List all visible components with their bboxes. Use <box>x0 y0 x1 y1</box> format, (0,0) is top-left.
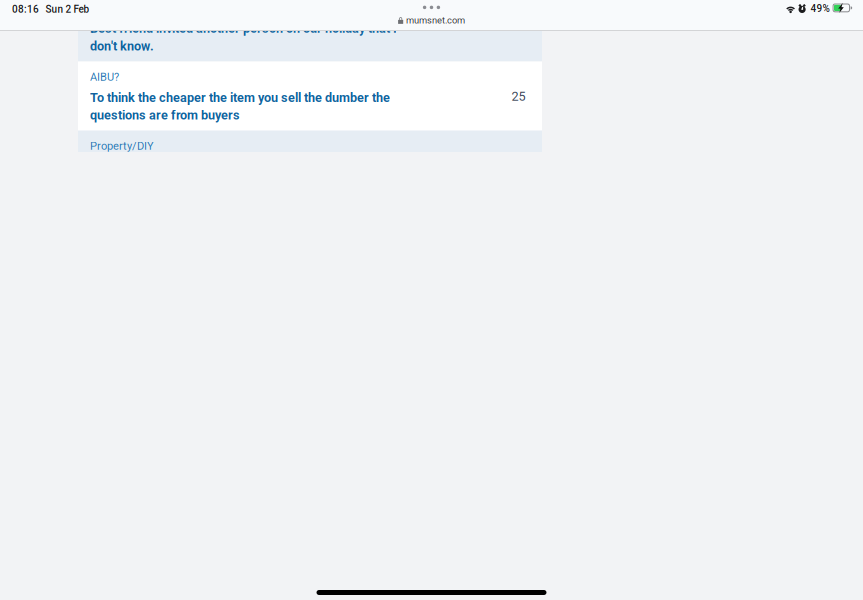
staticText: To think the cheaper the item you sell t… <box>90 90 390 105</box>
button[interactable]: AIBU? <box>78 61 542 131</box>
staticText: Best friend invited another person on ou… <box>90 21 397 36</box>
staticText: don't know. <box>90 39 154 53</box>
staticText: 25 <box>511 89 525 104</box>
button[interactable]: Show tabs <box>411 3 451 11</box>
staticText: questions are from buyers <box>90 108 240 123</box>
staticText: Property/DIY <box>90 139 154 152</box>
button[interactable]: Property/DIY <box>78 131 542 182</box>
staticText: AIBU? <box>90 70 119 83</box>
staticText: Sun 2 Feb <box>45 3 89 15</box>
staticText: mumsnet.com <box>406 15 465 26</box>
button[interactable]: Holidays <box>78 0 542 61</box>
staticText: 49% <box>810 3 829 14</box>
staticText: 08:16 <box>12 3 39 15</box>
button[interactable]: mumsnet.com <box>398 15 465 26</box>
